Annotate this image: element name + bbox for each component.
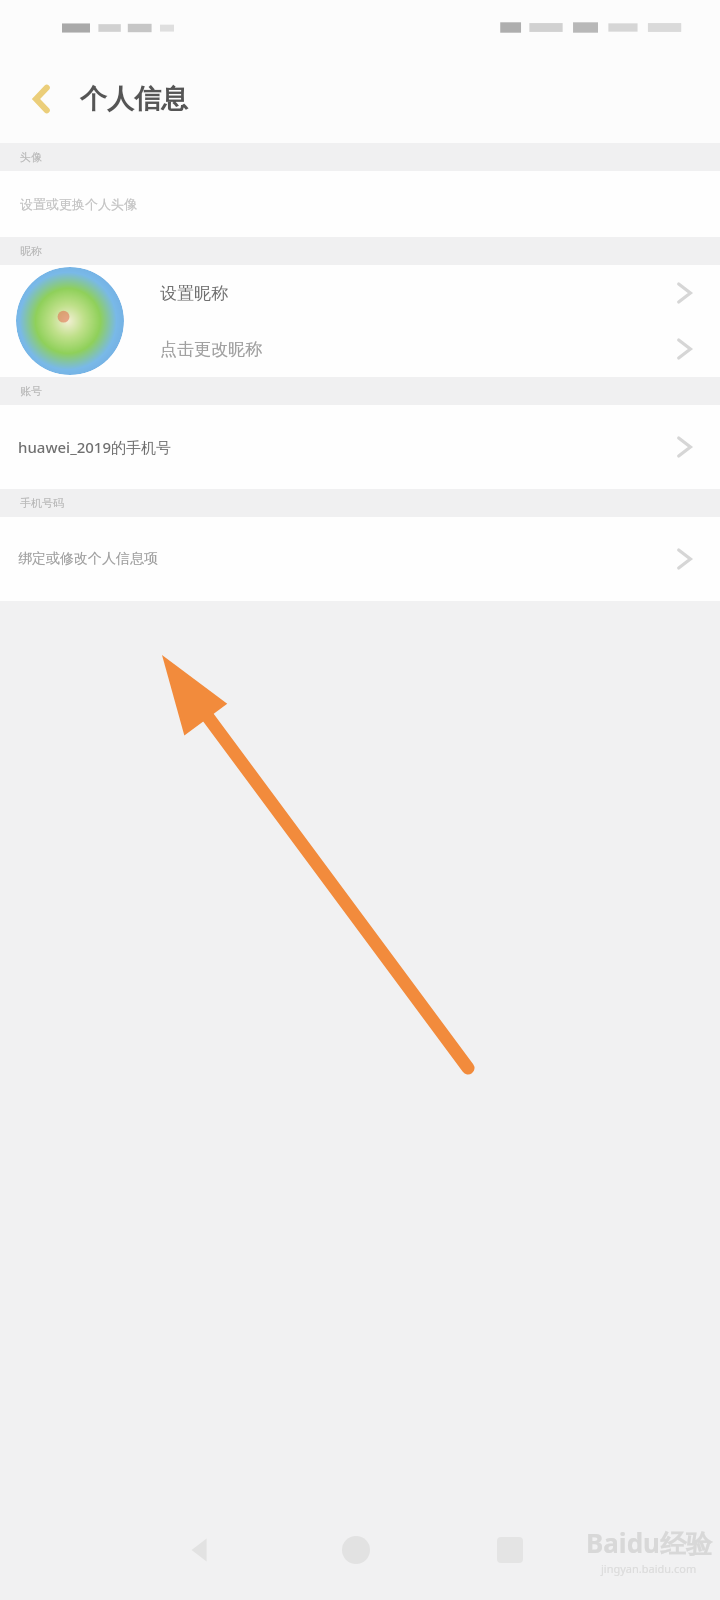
staticText: huawei_2019的手机号 <box>18 437 171 457</box>
button[interactable]: Home <box>314 1508 398 1592</box>
staticText: 绑定或修改个人信息项 <box>18 550 158 568</box>
staticText: 设置昵称 <box>160 283 228 304</box>
staticText: 昵称 <box>20 244 42 258</box>
button[interactable]: Recents <box>468 1508 552 1592</box>
button[interactable]: huawei_2019的手机号 <box>0 405 720 489</box>
button[interactable]: 设置昵称 <box>0 265 720 321</box>
staticText: 头像 <box>20 150 42 164</box>
button[interactable]: Back <box>10 67 74 131</box>
staticText: Baidu经验 <box>586 1525 712 1561</box>
button[interactable]: 点击更改昵称 <box>0 321 720 377</box>
button[interactable]: 绑定或修改个人信息项 <box>0 517 720 601</box>
staticText: jingyan.baidu.com <box>601 1561 697 1576</box>
staticText: 个人信息 <box>80 82 188 116</box>
staticText: 点击更改昵称 <box>160 339 262 360</box>
staticText: 设置或更换个人头像 <box>20 196 137 212</box>
staticText: 手机号码 <box>20 496 64 510</box>
staticText: 账号 <box>20 384 42 398</box>
